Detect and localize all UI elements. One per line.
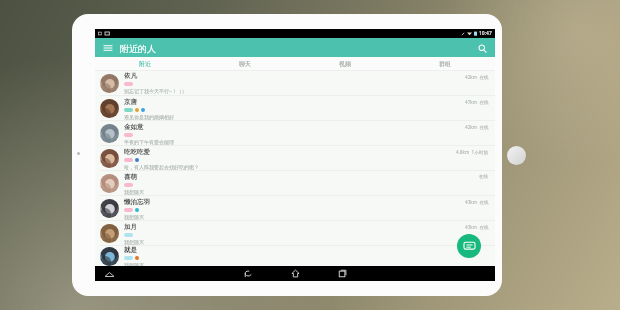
button[interactable]: New message (457, 234, 481, 258)
button[interactable]: 金如意 (95, 121, 495, 146)
staticText: 喜萌 (124, 173, 137, 181)
button[interactable]: 就是 (95, 246, 495, 266)
staticText: 懒泊忘羽 (124, 198, 150, 206)
button[interactable]: 群组 (395, 57, 495, 71)
button[interactable]: Recent apps (336, 267, 349, 280)
button[interactable]: 附近 (95, 57, 195, 71)
button[interactable]: Back (242, 267, 255, 280)
staticText: 别忘记了我今天不行~！（） (124, 88, 187, 95)
staticText: 42km 在线 (465, 124, 489, 130)
button[interactable]: Home button (507, 146, 526, 165)
staticText: 就是 (124, 246, 137, 254)
staticText: 43km 在线 (465, 199, 489, 205)
button[interactable]: Home (289, 267, 302, 280)
staticText: 我想随灭 (124, 189, 144, 195)
staticText: 群组 (439, 60, 451, 68)
staticText: 视频 (339, 60, 351, 68)
staticText: 47km 在线 (465, 99, 489, 105)
staticText: 我想随灭 (124, 239, 144, 245)
staticText: 京唐 (124, 98, 137, 106)
staticText: 我想随灭 (124, 214, 144, 220)
button[interactable]: 喜萌 (95, 171, 495, 196)
staticText: 我想随灭 (124, 262, 144, 266)
button[interactable]: 吃吃吃爱 (95, 146, 495, 171)
staticText: 哈，有人阵我要起去找好吃的呢？ (124, 164, 199, 170)
staticText: 金如意 (124, 123, 144, 131)
button[interactable]: 视频 (295, 57, 395, 71)
staticText: 42km 在线 (465, 74, 489, 80)
staticText: 聊天 (239, 60, 251, 68)
staticText: 加月 (124, 223, 137, 231)
staticText: 附近 (139, 60, 151, 68)
button[interactable]: Quick settings (103, 268, 115, 280)
button[interactable]: Search (475, 41, 489, 55)
button[interactable]: Open navigation menu (102, 42, 114, 54)
staticText: 4.8km 1小时前 (456, 149, 489, 155)
staticText: 10:47 (479, 30, 492, 37)
staticText: 半夜的下午有爱会能理 (124, 139, 174, 145)
button[interactable]: 京唐 (95, 96, 495, 121)
staticText: 遇见你是我的婚姻相好 (124, 114, 174, 120)
staticText: 吃吃吃爱 (124, 148, 150, 156)
staticText: 依凡 (124, 72, 137, 80)
button[interactable]: 懒泊忘羽 (95, 196, 495, 221)
staticText: 43km 在线 (465, 224, 489, 230)
button[interactable]: 聊天 (195, 57, 295, 71)
staticText: 在线 (479, 174, 489, 180)
button[interactable]: 依凡 (95, 71, 495, 96)
staticText: 附近的人 (120, 43, 156, 54)
button[interactable]: 加月 (95, 221, 495, 246)
